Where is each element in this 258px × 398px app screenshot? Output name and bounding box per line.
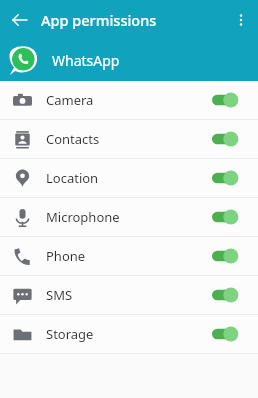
staticText: Location bbox=[46, 169, 99, 187]
staticText: Contacts bbox=[46, 130, 100, 148]
button[interactable]: Camera permission toggle bbox=[208, 83, 250, 117]
button[interactable]: Storage permission toggle bbox=[208, 317, 250, 351]
staticText: Microphone bbox=[46, 208, 120, 226]
button[interactable]: Phone bbox=[0, 237, 258, 275]
button[interactable]: Location permission toggle bbox=[208, 161, 250, 195]
button[interactable]: Contacts permission toggle bbox=[208, 122, 250, 156]
staticText: App permissions bbox=[41, 10, 157, 30]
staticText: WhatsApp bbox=[52, 51, 120, 70]
button[interactable]: Phone permission toggle bbox=[208, 239, 250, 273]
button[interactable]: Contacts bbox=[0, 120, 258, 158]
staticText: Phone bbox=[46, 247, 86, 265]
staticText: SMS bbox=[46, 286, 73, 304]
button[interactable]: Storage bbox=[0, 315, 258, 353]
staticText: Camera bbox=[46, 91, 94, 109]
button[interactable]: Location bbox=[0, 159, 258, 197]
button[interactable]: Camera bbox=[0, 81, 258, 119]
button[interactable]: Microphone bbox=[0, 198, 258, 236]
button[interactable]: SMS bbox=[0, 276, 258, 314]
button[interactable]: WhatsApp bbox=[0, 40, 258, 81]
staticText: Storage bbox=[46, 325, 94, 343]
button[interactable]: More options bbox=[227, 6, 255, 34]
button[interactable]: Microphone permission toggle bbox=[208, 200, 250, 234]
button[interactable]: SMS permission toggle bbox=[208, 278, 250, 312]
button[interactable]: Back bbox=[4, 4, 36, 36]
